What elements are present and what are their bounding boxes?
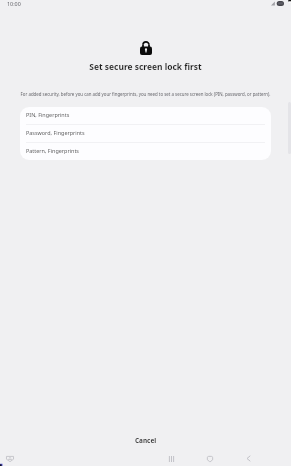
staticText: 10:00 bbox=[7, 0, 21, 7]
button[interactable]: Back bbox=[242, 452, 255, 465]
staticText: Password, Fingerprints bbox=[26, 129, 85, 136]
staticText: For added security, before you can add y… bbox=[8, 91, 283, 97]
staticText: Cancel bbox=[135, 436, 157, 445]
button[interactable]: Home bbox=[203, 452, 216, 465]
staticText: Set secure screen lock first bbox=[0, 61, 291, 73]
button[interactable]: Recent apps bbox=[165, 452, 178, 465]
button[interactable]: Accessibility bbox=[3, 452, 16, 465]
staticText: Pattern, Fingerprints bbox=[26, 147, 79, 154]
staticText: PIN, Fingerprints bbox=[26, 111, 70, 118]
button[interactable]: Cancel bbox=[111, 430, 181, 451]
button[interactable]: Password, Fingerprints bbox=[20, 125, 271, 142]
button[interactable]: PIN, Fingerprints bbox=[20, 107, 271, 124]
button[interactable]: Pattern, Fingerprints bbox=[20, 143, 271, 160]
